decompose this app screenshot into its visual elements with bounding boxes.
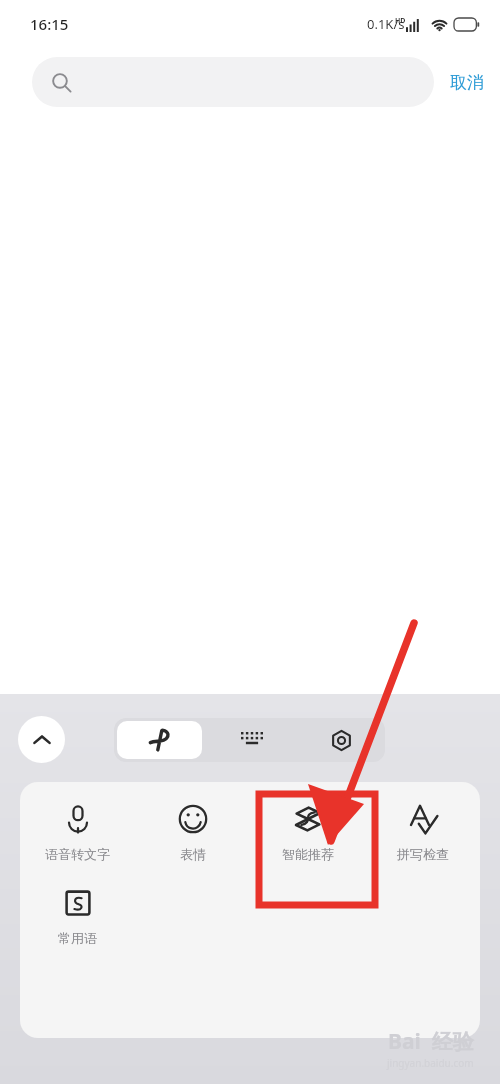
button[interactable] xyxy=(32,57,434,107)
button[interactable]: 智能推荐 xyxy=(250,804,365,862)
staticText: 拼写检查 xyxy=(397,846,449,862)
staticText: 取消 xyxy=(450,72,484,93)
staticText: Bai 经验 xyxy=(388,1027,474,1056)
button[interactable]: Settings xyxy=(298,718,385,762)
button[interactable]: Collapse xyxy=(18,716,65,763)
staticText: HD xyxy=(395,16,406,26)
staticText: 表情 xyxy=(180,846,206,862)
button[interactable]: 取消 xyxy=(434,57,500,107)
staticText: 智能推荐 xyxy=(282,846,334,862)
button[interactable]: 表情 xyxy=(135,804,250,862)
button[interactable]: Tools xyxy=(117,721,202,759)
button[interactable]: 语音转文字 xyxy=(20,804,135,862)
staticText: 常用语 xyxy=(58,930,97,946)
button[interactable]: 常用语 xyxy=(20,888,135,946)
staticText: 16:15 xyxy=(30,14,69,34)
button[interactable]: Keyboard xyxy=(205,718,298,762)
staticText: 语音转文字 xyxy=(45,846,110,862)
staticText: 0.1K/s xyxy=(367,15,405,33)
button[interactable]: 拼写检查 xyxy=(365,804,480,862)
